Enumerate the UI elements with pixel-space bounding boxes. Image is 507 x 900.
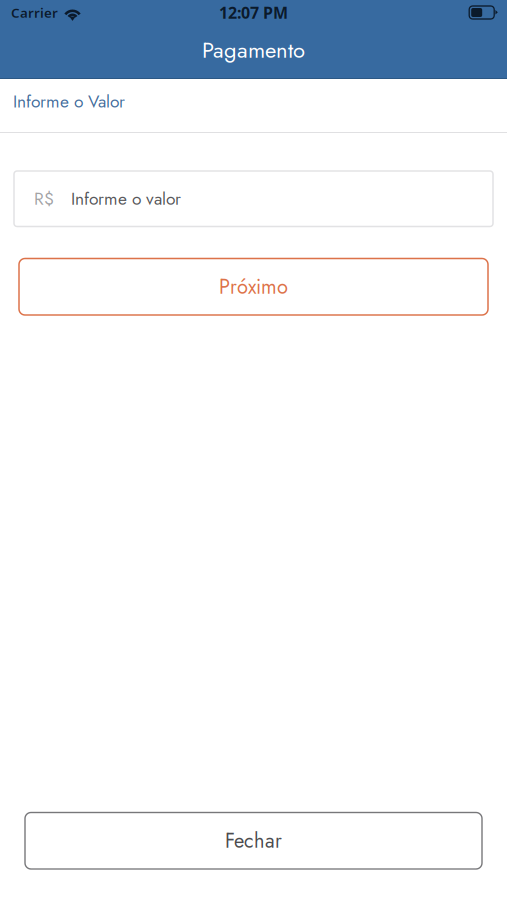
- staticText: Informe o Valor: [13, 89, 125, 114]
- staticText: Carrier: [11, 4, 58, 21]
- staticText: Pagamento: [202, 34, 305, 66]
- staticText: Próximo: [219, 272, 288, 301]
- button[interactable]: Próximo: [19, 258, 488, 315]
- button[interactable]: Informe o Valor: [0, 79, 507, 132]
- staticText: Fechar: [225, 826, 282, 855]
- button[interactable]: Fechar: [25, 812, 482, 869]
- staticText: 12:07 PM: [219, 2, 288, 23]
- staticText: R$: [34, 186, 54, 211]
- staticText: Informe o valor: [71, 186, 181, 211]
